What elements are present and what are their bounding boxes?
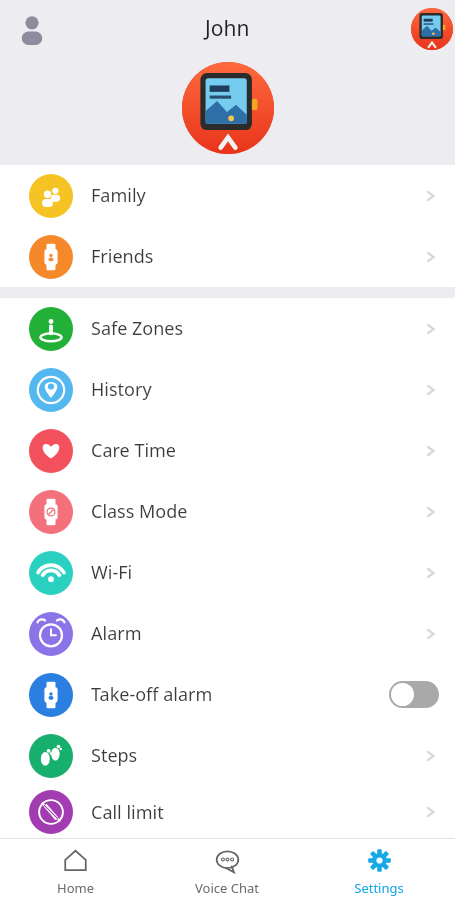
- staticText: Settings: [354, 879, 404, 897]
- staticText: John: [205, 14, 250, 43]
- staticText: Steps: [91, 743, 138, 768]
- staticText: Home: [57, 879, 94, 897]
- button[interactable]: Home: [0, 839, 151, 900]
- button[interactable]: Settings: [303, 839, 455, 900]
- button[interactable]: Wi-Fi: [0, 542, 455, 603]
- button[interactable]: Voice Chat: [151, 839, 303, 900]
- staticText: Take-off alarm: [91, 682, 213, 707]
- staticText: History: [91, 377, 152, 402]
- button[interactable]: Safe Zones: [0, 298, 455, 359]
- button[interactable]: Account: [10, 8, 54, 52]
- button[interactable]: Alarm: [0, 603, 455, 664]
- button[interactable]: Steps: [0, 725, 455, 786]
- staticText: Wi-Fi: [91, 560, 133, 585]
- button[interactable]: Family: [0, 165, 455, 226]
- button[interactable]: Care Time: [0, 420, 455, 481]
- button[interactable]: Device: [411, 8, 453, 50]
- button[interactable]: Take-off alarm: [0, 664, 455, 725]
- button[interactable]: Class Mode: [0, 481, 455, 542]
- staticText: Safe Zones: [91, 316, 184, 341]
- staticText: Call limit: [91, 800, 164, 825]
- staticText: Alarm: [91, 621, 142, 646]
- button[interactable]: Call limit: [0, 786, 455, 838]
- button[interactable]: Friends: [0, 226, 455, 287]
- button[interactable]: Watch avatar: [182, 62, 274, 154]
- staticText: Voice Chat: [195, 879, 259, 897]
- staticText: Friends: [91, 244, 154, 269]
- staticText: Class Mode: [91, 499, 188, 524]
- staticText: Care Time: [91, 438, 177, 463]
- button[interactable]: History: [0, 359, 455, 420]
- staticText: Family: [91, 183, 146, 208]
- button[interactable]: [389, 681, 439, 708]
